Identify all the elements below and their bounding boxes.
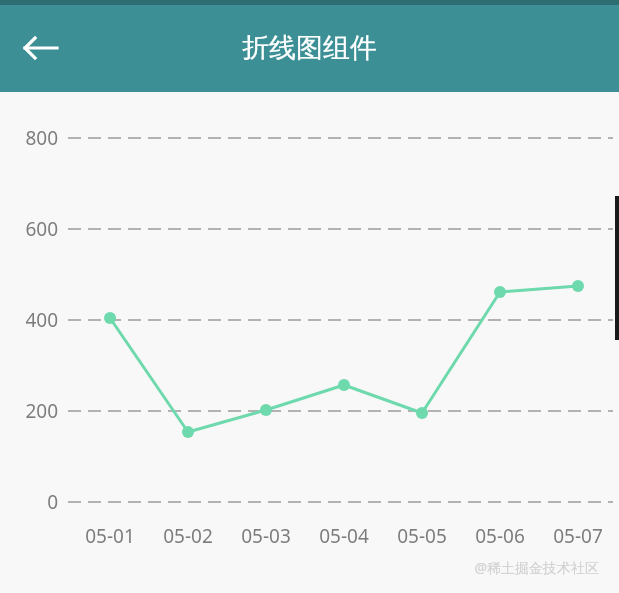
- staticText: 05-06: [475, 523, 525, 549]
- button[interactable]: Back: [14, 22, 68, 74]
- staticText: 05-05: [397, 523, 447, 549]
- staticText: 05-04: [319, 523, 369, 549]
- staticText: 05-01: [85, 523, 135, 549]
- staticText: 800: [25, 125, 58, 151]
- staticText: 600: [25, 216, 58, 242]
- staticText: 400: [25, 307, 58, 333]
- staticText: 05-03: [241, 523, 291, 549]
- staticText: 200: [25, 398, 58, 424]
- staticText: @稀土掘金技术社区: [474, 558, 599, 577]
- staticText: 折线图组件: [242, 31, 377, 65]
- staticText: 05-02: [163, 523, 213, 549]
- staticText: 0: [47, 489, 58, 515]
- staticText: 05-07: [553, 523, 603, 549]
